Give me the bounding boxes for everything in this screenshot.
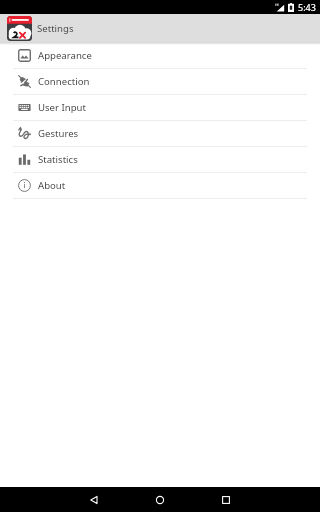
staticText: Gestures <box>38 127 79 140</box>
staticText: Connection <box>38 75 90 88</box>
button[interactable]: Connection <box>0 69 320 94</box>
staticText: About <box>38 179 66 192</box>
button[interactable]: Statistics <box>0 147 320 172</box>
button[interactable]: User Input <box>0 95 320 120</box>
staticText: Appearance <box>38 49 92 62</box>
button[interactable]: About <box>0 173 320 198</box>
button[interactable]: Back <box>74 487 114 512</box>
staticText: Settings <box>37 22 74 35</box>
button[interactable]: Appearance <box>0 42 320 68</box>
staticText: User Input <box>38 101 86 114</box>
staticText: Statistics <box>38 153 78 166</box>
button[interactable]: Recent apps <box>206 487 246 512</box>
button[interactable]: Gestures <box>0 121 320 146</box>
button[interactable]: Home <box>140 487 180 512</box>
staticText: 5:43 <box>298 1 316 13</box>
